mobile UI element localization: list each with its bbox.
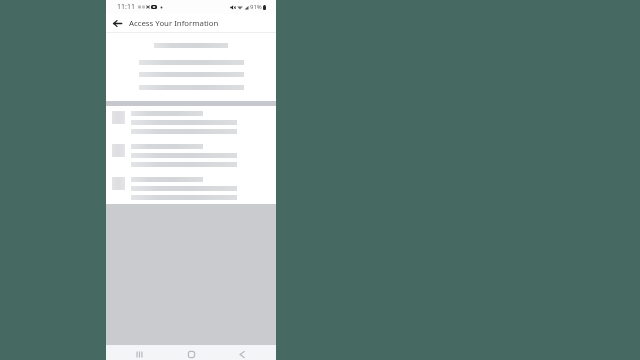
staticText: Access Your Information	[129, 18, 219, 29]
button[interactable]: Recent apps	[128, 345, 150, 360]
button[interactable]	[106, 144, 276, 167]
staticText: 11:11	[117, 2, 135, 12]
staticText: 91%	[250, 3, 262, 11]
button[interactable]: Back	[111, 17, 124, 30]
button[interactable]	[106, 111, 276, 134]
button[interactable]	[106, 177, 276, 200]
button[interactable]: Home	[180, 345, 202, 360]
button[interactable]: Back	[231, 345, 253, 360]
